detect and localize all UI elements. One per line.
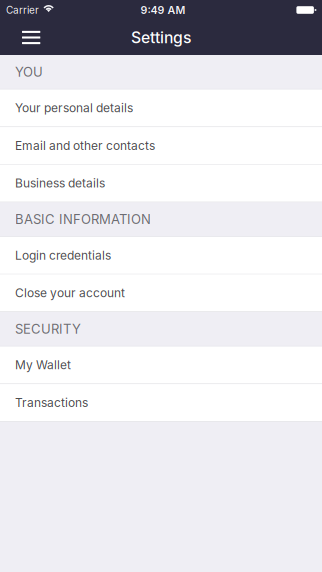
button[interactable]: Close your account xyxy=(0,274,322,312)
staticText: BASIC INFORMATION xyxy=(15,211,151,227)
staticText: Your personal details xyxy=(15,101,133,115)
button[interactable]: Transactions xyxy=(0,384,322,422)
button[interactable]: Your personal details xyxy=(0,89,322,127)
staticText: 9:49 AM xyxy=(140,3,185,16)
staticText: Business details xyxy=(15,176,105,190)
button[interactable]: Business details xyxy=(0,165,322,202)
button[interactable]: Login credentials xyxy=(0,237,322,274)
staticText: Transactions xyxy=(15,395,88,410)
staticText: My Wallet xyxy=(15,358,71,372)
staticText: Close your account xyxy=(15,286,125,300)
staticText: Email and other contacts xyxy=(15,138,155,153)
staticText: SECURITY xyxy=(15,321,81,337)
button[interactable]: My Wallet xyxy=(0,346,322,384)
staticText: YOU xyxy=(15,64,43,80)
button[interactable]: Menu xyxy=(0,20,64,55)
staticText: Login credentials xyxy=(15,248,111,262)
button[interactable]: Email and other contacts xyxy=(0,127,322,165)
staticText: Settings xyxy=(131,28,191,47)
staticText: Carrier xyxy=(6,4,39,16)
